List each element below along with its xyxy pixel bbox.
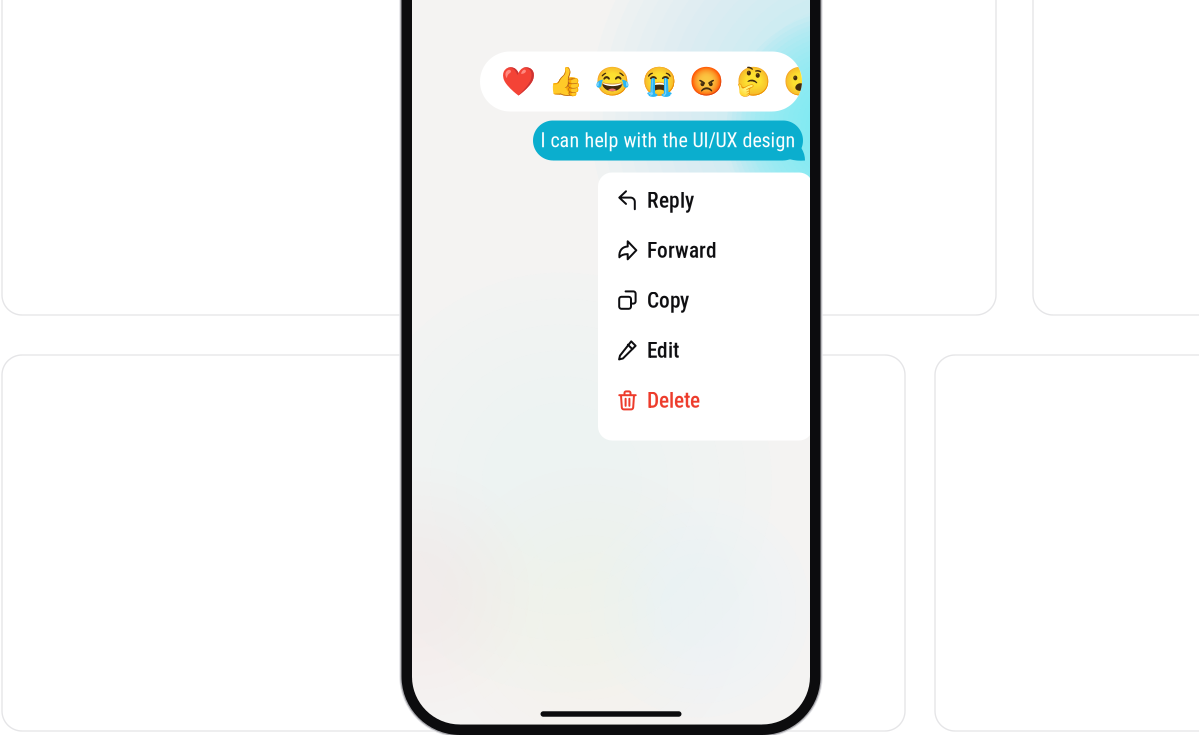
button[interactable]: React bbox=[730, 51, 777, 111]
staticText: 👍 bbox=[548, 65, 583, 97]
button[interactable]: Reply bbox=[598, 175, 813, 225]
button[interactable]: Delete bbox=[598, 375, 813, 425]
button[interactable]: Forward bbox=[598, 225, 813, 275]
staticText: Reply bbox=[647, 188, 694, 213]
button[interactable]: Edit bbox=[598, 325, 813, 375]
staticText: ❤️ bbox=[501, 65, 536, 97]
staticText: Delete bbox=[647, 388, 700, 413]
button[interactable]: React bbox=[589, 51, 636, 111]
staticText: I can help with the UI/UX design bbox=[540, 129, 795, 152]
button[interactable]: React bbox=[495, 51, 542, 111]
staticText: Forward bbox=[647, 238, 717, 263]
button[interactable]: Copy bbox=[598, 275, 813, 325]
staticText: 🤔 bbox=[736, 65, 771, 97]
staticText: 😡 bbox=[689, 65, 724, 97]
staticText: Edit bbox=[647, 338, 679, 363]
staticText: Copy bbox=[647, 288, 689, 313]
staticText: 😂 bbox=[595, 65, 630, 97]
button[interactable]: React bbox=[636, 51, 683, 111]
button[interactable]: React bbox=[683, 51, 730, 111]
button[interactable]: React bbox=[542, 51, 589, 111]
staticText: 😮 bbox=[783, 65, 818, 97]
staticText: 😭 bbox=[642, 65, 677, 97]
button[interactable]: React bbox=[777, 51, 824, 111]
